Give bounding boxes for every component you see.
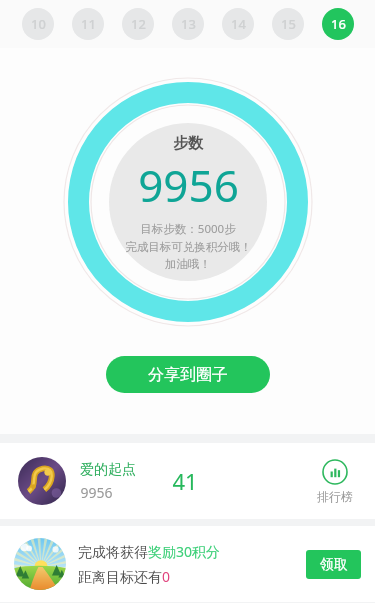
button[interactable]: 14	[222, 8, 254, 40]
staticText: 步数	[173, 134, 203, 153]
button[interactable]: 15	[272, 8, 304, 40]
staticText: 9956	[80, 483, 113, 502]
staticText: 11	[81, 15, 96, 33]
staticText: 完成目标可兑换积分哦！	[125, 240, 252, 254]
button[interactable]: 排行榜	[313, 455, 357, 508]
staticText: 16	[331, 15, 346, 33]
staticText: 领取	[320, 556, 348, 574]
staticText: 爱的起点	[80, 461, 136, 479]
button[interactable]: 10	[22, 8, 54, 40]
button[interactable]: 12	[122, 8, 154, 40]
staticText: 距离目标还有0	[78, 567, 171, 586]
staticText: 15	[281, 15, 296, 33]
staticText: 12	[131, 15, 146, 33]
staticText: 排行榜	[317, 489, 353, 504]
button[interactable]: 领取	[306, 550, 361, 579]
button[interactable]: 16	[322, 8, 354, 40]
staticText: 加油哦！	[165, 257, 211, 271]
button[interactable]: 分享到圈子	[106, 356, 270, 393]
button[interactable]: 11	[72, 8, 104, 40]
staticText: 10	[31, 15, 46, 33]
staticText: 9956	[138, 155, 239, 215]
button[interactable]: 13	[172, 8, 204, 40]
staticText: 目标步数：5000步	[140, 221, 236, 237]
staticText: 41	[172, 466, 198, 496]
staticText: 分享到圈子	[148, 365, 228, 385]
staticText: 完成将获得奖励30积分	[78, 542, 221, 561]
staticText: 13	[181, 15, 196, 33]
staticText: 14	[231, 15, 246, 33]
button[interactable]: 爱的起点	[0, 443, 375, 519]
